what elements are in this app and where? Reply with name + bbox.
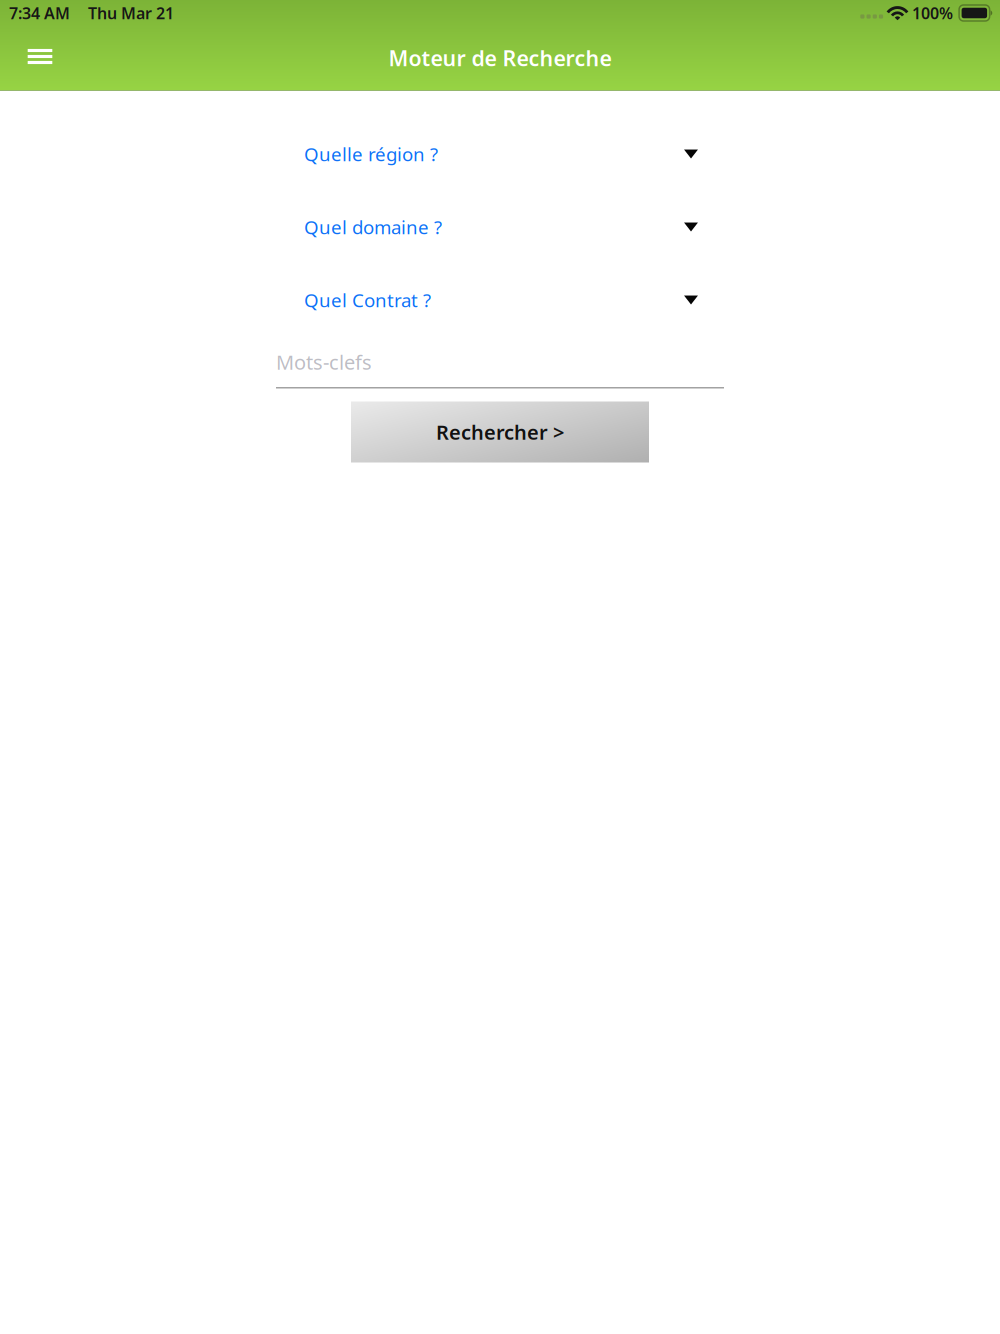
button[interactable]: Quel domaine ? <box>276 198 724 256</box>
staticText: Moteur de Recherche <box>388 44 611 72</box>
staticText: Quel domaine ? <box>304 215 442 239</box>
staticText: Quelle région ? <box>304 142 438 166</box>
staticText: 100% <box>912 2 953 24</box>
staticText: Thu Mar 21 <box>88 2 174 24</box>
staticText: Rechercher > <box>436 419 564 445</box>
button[interactable]: Quelle région ? <box>276 125 724 183</box>
staticText: Mots-clefs <box>276 349 372 375</box>
button[interactable]: Quel Contrat ? <box>276 271 724 329</box>
button[interactable]: Rechercher > <box>351 401 649 462</box>
staticText: Quel Contrat ? <box>304 288 431 312</box>
button[interactable]: Menu <box>0 26 80 90</box>
staticText: 7:34 AM <box>9 2 70 24</box>
